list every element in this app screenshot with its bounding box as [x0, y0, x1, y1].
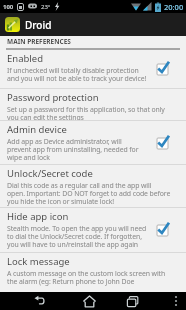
button[interactable]: Admin device — [0, 121, 186, 164]
button[interactable]: Password protection — [0, 89, 186, 120]
staticText: Set up a password for this application, … — [7, 105, 165, 120]
button[interactable]: Unlock/Secret code — [0, 165, 186, 207]
staticText: Stealth mode. To open the app you will n… — [7, 224, 147, 249]
staticText: 23° — [41, 3, 51, 11]
staticText: Hide app icon — [7, 210, 69, 223]
button[interactable]: Lock message — [0, 253, 186, 292]
staticText: If unchecked will totally disable protec… — [7, 66, 147, 83]
button[interactable] — [156, 222, 172, 238]
staticText: Admin device — [7, 123, 67, 136]
staticText: 100 — [3, 3, 14, 11]
staticText: Droid — [25, 18, 52, 32]
button[interactable] — [126, 295, 139, 308]
button[interactable]: Enabled — [0, 50, 186, 88]
staticText: Password protection — [7, 91, 99, 104]
staticText: 20:00 — [164, 2, 184, 12]
button[interactable] — [83, 295, 96, 308]
staticText: Add app as Device administrator, will pr… — [7, 137, 139, 162]
button[interactable] — [174, 295, 178, 307]
staticText: MAIN PREFERENCES — [7, 37, 71, 46]
staticText: Dial this code as a regular call and the… — [7, 181, 171, 206]
button[interactable] — [156, 61, 172, 77]
staticText: A custom message on the custom lock scre… — [7, 269, 166, 286]
button[interactable]: Hide app icon — [0, 208, 186, 252]
staticText: Lock message — [7, 255, 70, 268]
button[interactable] — [34, 295, 46, 307]
button[interactable] — [156, 135, 172, 151]
staticText: Enabled — [7, 52, 43, 65]
staticText: Unlock/Secret code — [7, 167, 93, 180]
